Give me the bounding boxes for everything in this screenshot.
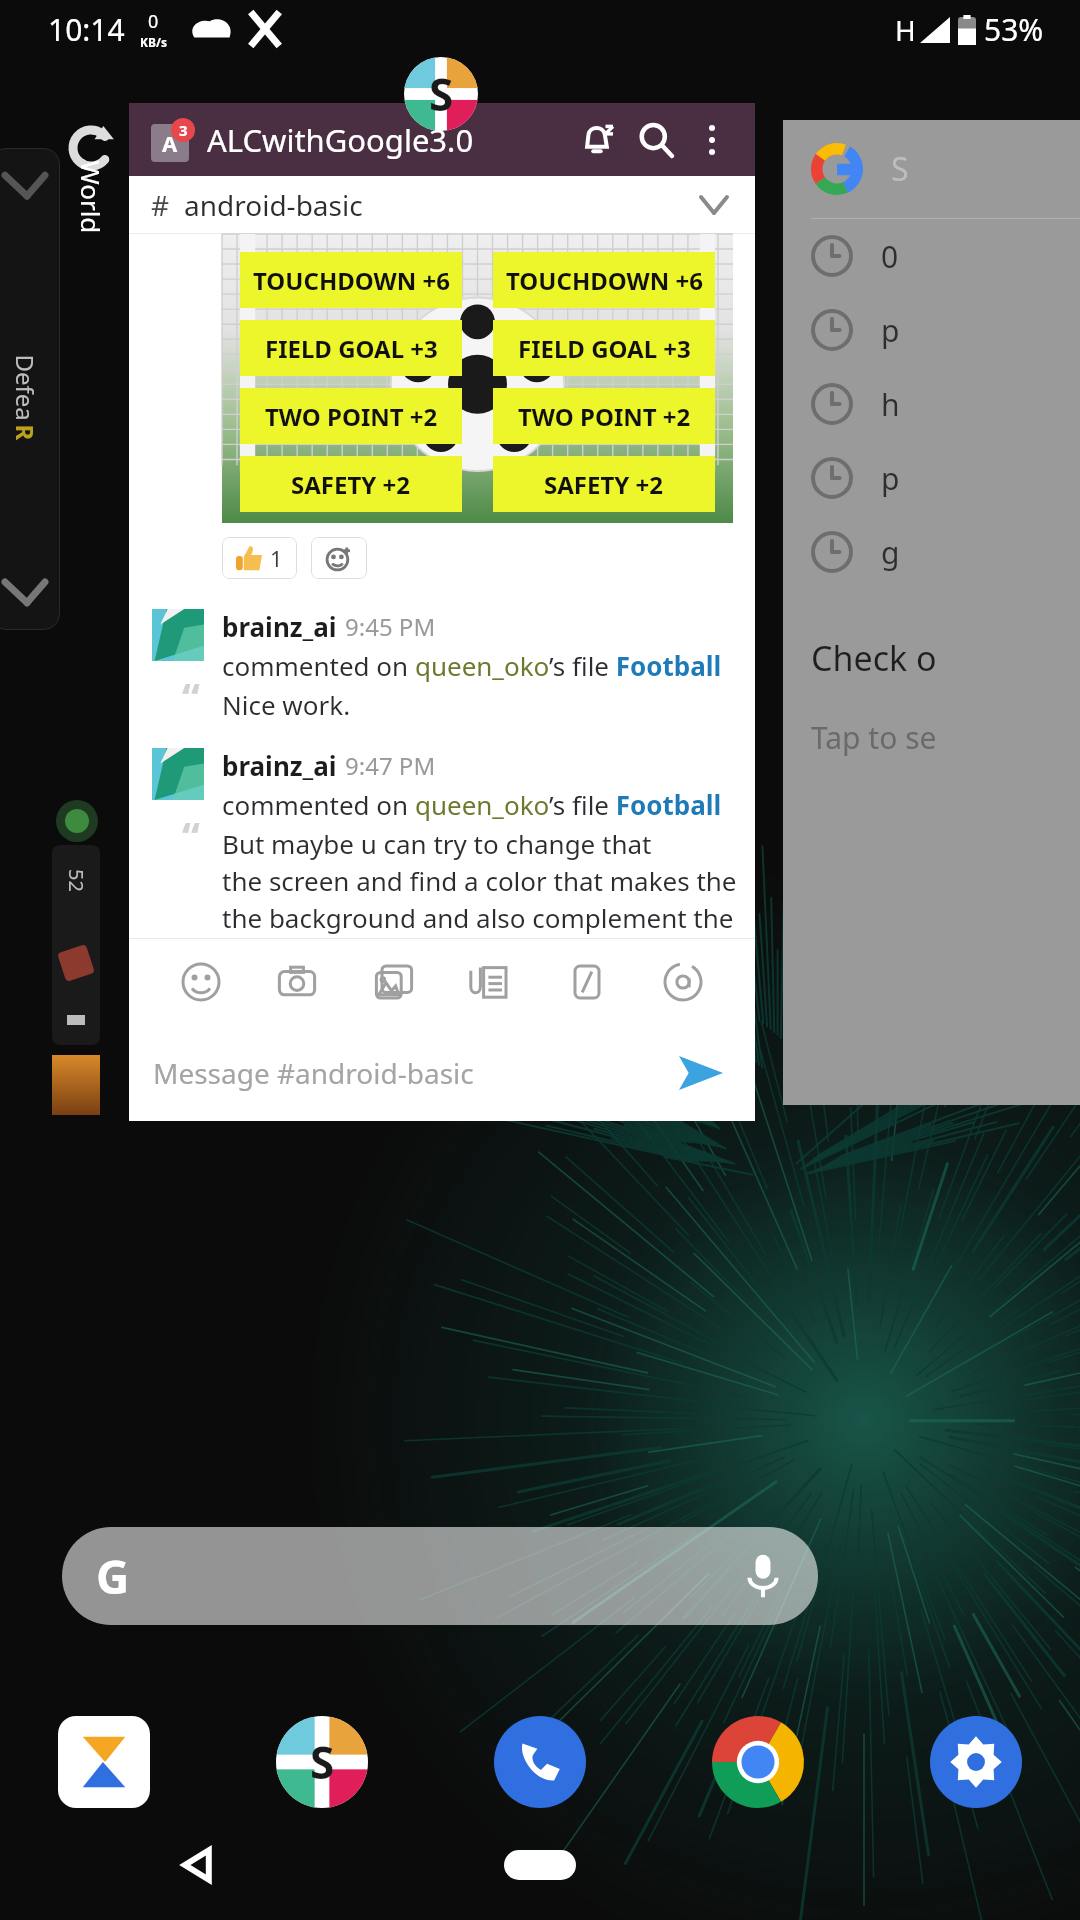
staticText: 0 bbox=[148, 9, 159, 34]
button[interactable]: Football Score Keeper image bbox=[222, 234, 733, 523]
staticText: brainz_ai bbox=[222, 748, 337, 783]
staticText: android-basic bbox=[184, 186, 363, 224]
staticText: 3 bbox=[179, 120, 188, 140]
button[interactable]: Files Go bbox=[56, 1714, 152, 1810]
staticText: H bbox=[895, 11, 916, 49]
staticText: 0 bbox=[881, 236, 899, 277]
button[interactable]: g bbox=[811, 515, 1080, 589]
button[interactable]: Settings bbox=[928, 1714, 1024, 1810]
staticText: p bbox=[881, 458, 900, 499]
button[interactable]: Camera bbox=[260, 945, 334, 1019]
button[interactable]: Photos bbox=[357, 945, 431, 1019]
staticText: 52 bbox=[63, 869, 90, 892]
staticText: Nice work. bbox=[222, 687, 351, 722]
staticText: the screen and find a color that makes t… bbox=[222, 863, 739, 898]
staticText: Check o bbox=[811, 635, 937, 681]
staticText: h bbox=[881, 384, 900, 425]
button[interactable]: Emoji bbox=[164, 945, 238, 1019]
staticText: commented on queen_oko’s file Football S… bbox=[222, 648, 739, 683]
staticText: # bbox=[151, 186, 170, 224]
staticText: G bbox=[96, 1545, 130, 1608]
staticText: 1 bbox=[270, 543, 283, 573]
button[interactable]: “ bbox=[129, 748, 755, 938]
button[interactable]: Defeat bbox=[0, 148, 60, 630]
staticText: 9:45 PM bbox=[345, 610, 436, 643]
button[interactable]: p bbox=[811, 293, 1080, 367]
button[interactable]: Phone bbox=[492, 1714, 588, 1810]
button[interactable]: Voice search bbox=[746, 1553, 780, 1599]
button[interactable]: More options bbox=[685, 113, 739, 167]
staticText: Defeat bbox=[8, 354, 41, 424]
button[interactable]: # bbox=[129, 176, 755, 234]
staticText: FIELD GOAL +3 bbox=[518, 332, 691, 365]
button[interactable]: Do not disturb bbox=[569, 111, 627, 169]
staticText: 9:47 PM bbox=[345, 749, 436, 782]
staticText: the background and also complement the b… bbox=[222, 900, 739, 935]
staticText: A bbox=[162, 128, 178, 158]
staticText: World Tour bbox=[73, 160, 108, 238]
staticText: S bbox=[310, 1732, 335, 1792]
staticText: “ bbox=[182, 669, 200, 723]
staticText: TOUCHDOWN +6 bbox=[253, 264, 450, 297]
staticText: But maybe u can try to change that backg… bbox=[222, 826, 739, 861]
staticText: 10:14 bbox=[48, 9, 125, 50]
staticText: ALCwithGoogle3.0 bbox=[207, 119, 474, 161]
staticText: p bbox=[881, 310, 900, 351]
staticText: Tap to se bbox=[811, 717, 937, 758]
button[interactable]: Search bbox=[627, 111, 685, 169]
button[interactable]: Home bbox=[504, 1850, 576, 1880]
button[interactable]: Back bbox=[172, 1842, 218, 1888]
staticText: g bbox=[881, 532, 900, 573]
button[interactable]: “ bbox=[129, 609, 755, 724]
button[interactable]: 0 bbox=[811, 219, 1080, 293]
button[interactable]: Attach file bbox=[453, 945, 527, 1019]
staticText: SAFETY +2 bbox=[544, 468, 664, 501]
staticText: TOUCHDOWN +6 bbox=[506, 264, 703, 297]
staticText: S bbox=[429, 64, 454, 124]
staticText: “ bbox=[182, 808, 200, 862]
staticText: TWO POINT +2 bbox=[265, 400, 438, 433]
staticText: brainz_ai bbox=[222, 609, 337, 644]
staticText: SAFETY +2 bbox=[291, 468, 411, 501]
button[interactable]: S bbox=[783, 120, 1080, 1105]
staticText: KB/s bbox=[140, 34, 167, 50]
button[interactable]: 1 bbox=[236, 537, 283, 579]
staticText: S bbox=[891, 147, 909, 191]
staticText: 53% bbox=[984, 9, 1044, 50]
button[interactable]: Slack bbox=[274, 1714, 370, 1810]
button[interactable]: Slash command bbox=[550, 945, 624, 1019]
button[interactable]: Send bbox=[671, 1043, 731, 1103]
button[interactable]: p bbox=[811, 441, 1080, 515]
button[interactable]: Workspace bbox=[151, 118, 195, 162]
button[interactable]: Chrome bbox=[710, 1714, 806, 1810]
staticText: TWO POINT +2 bbox=[518, 400, 691, 433]
staticText: commented on queen_oko’s file Football S… bbox=[222, 787, 739, 822]
button[interactable]: Add reaction bbox=[311, 537, 367, 579]
button[interactable]: Mention bbox=[646, 945, 720, 1019]
button[interactable]: Message #android-basic bbox=[153, 1054, 671, 1092]
button[interactable]: Search bbox=[62, 1527, 818, 1625]
button[interactable]: h bbox=[811, 367, 1080, 441]
staticText: FIELD GOAL +3 bbox=[265, 332, 438, 365]
